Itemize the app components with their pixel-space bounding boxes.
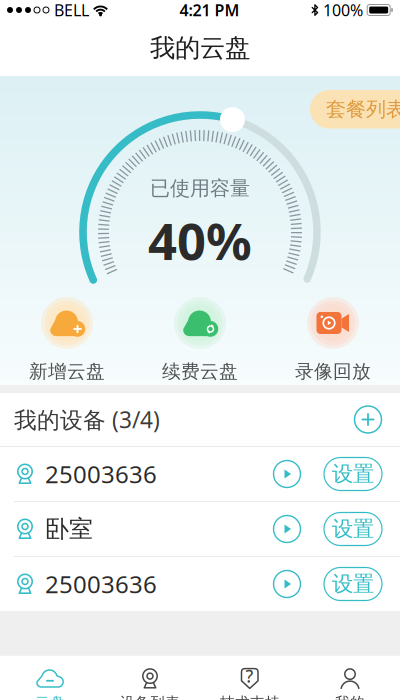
button[interactable]: 录像回放 — [266, 290, 399, 385]
staticText: 设置 — [332, 516, 374, 542]
staticText: 录像回放 — [295, 360, 371, 383]
button[interactable]: 新增云盘 — [0, 290, 133, 385]
button[interactable]: 设备列表 — [100, 656, 200, 700]
staticText: 套餐列表 — [326, 97, 400, 122]
staticText: 技术支持 — [220, 694, 280, 700]
staticText: 设备列表 — [120, 694, 180, 700]
staticText: ? — [245, 665, 253, 688]
button[interactable]: 设置 — [324, 512, 382, 545]
staticText: 25003636 — [45, 568, 157, 600]
button[interactable]: ? — [200, 656, 300, 700]
button[interactable]: 续费云盘 — [133, 290, 266, 385]
staticText: 设置 — [332, 571, 374, 597]
button[interactable]: Play — [272, 514, 302, 544]
staticText: 续费云盘 — [162, 360, 238, 383]
staticText: 设置 — [332, 461, 374, 487]
staticText: 新增云盘 — [29, 360, 105, 383]
button[interactable]: Play — [272, 459, 302, 489]
button[interactable]: 套餐列表 — [310, 90, 400, 129]
staticText: 我的 — [335, 694, 365, 700]
staticText: 4:21 PM — [179, 0, 239, 21]
staticText: 卧室 — [45, 514, 93, 544]
staticText: 100% — [323, 0, 363, 21]
staticText: 已使用容量 — [150, 176, 250, 201]
button[interactable]: 设置 — [324, 457, 382, 490]
button[interactable]: Play — [272, 569, 302, 599]
staticText: 我的设备 (3/4) — [14, 404, 160, 434]
staticText: 我的云盘 — [150, 32, 250, 63]
button[interactable]: 我的 — [300, 656, 400, 700]
button[interactable]: 云盘 — [0, 656, 100, 700]
button[interactable]: 设置 — [324, 567, 382, 600]
staticText: 云盘 — [35, 694, 65, 700]
staticText: BELL — [54, 0, 89, 21]
staticText: 25003636 — [45, 458, 157, 490]
staticText: 40% — [148, 207, 252, 274]
button[interactable]: Add device — [350, 401, 386, 437]
